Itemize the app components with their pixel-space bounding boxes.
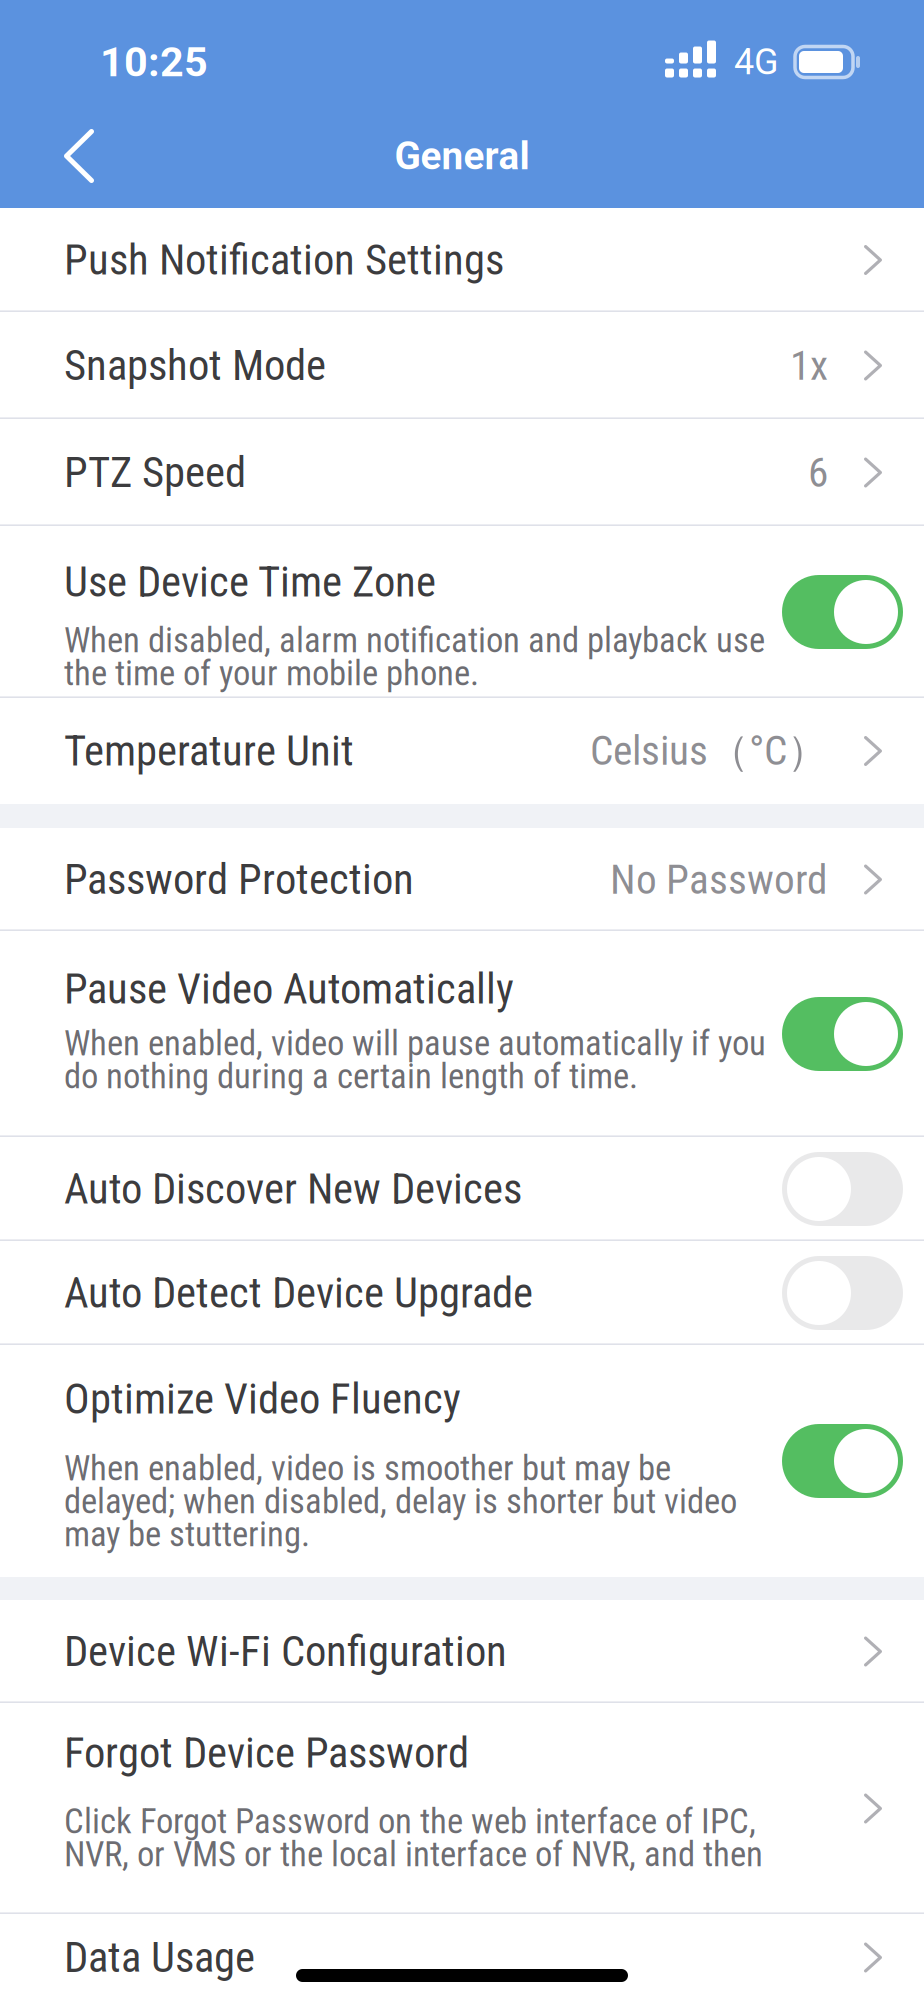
staticText: Data Usage bbox=[64, 1932, 255, 1982]
button[interactable]: Push Notification Settings bbox=[0, 208, 924, 312]
button[interactable]: Forgot Device Password bbox=[0, 1703, 924, 1914]
button[interactable]: Temperature Unit bbox=[0, 698, 924, 804]
staticText: the time of your mobile phone. bbox=[64, 653, 479, 694]
staticText: Push Notification Settings bbox=[64, 235, 504, 285]
button[interactable]: Auto Discover New Devices bbox=[0, 1137, 924, 1241]
button[interactable]: Snapshot Mode bbox=[0, 312, 924, 419]
button[interactable]: Pause Video Automatically bbox=[0, 931, 924, 1137]
staticText: When enabled, video will pause automatic… bbox=[64, 1023, 766, 1064]
staticText: Click Forgot Password on the web interfa… bbox=[64, 1801, 756, 1842]
button[interactable]: Data Usage bbox=[0, 1914, 924, 2000]
staticText: may be stuttering. bbox=[64, 1514, 310, 1555]
staticText: Celsius（°C） bbox=[590, 725, 828, 777]
staticText: Forgot Device Password bbox=[64, 1728, 469, 1778]
staticText: No Password bbox=[610, 855, 828, 904]
staticText: 10:25 bbox=[100, 38, 208, 86]
button[interactable]: PTZ Speed bbox=[0, 419, 924, 526]
staticText: 1x bbox=[790, 341, 828, 390]
staticText: 4G bbox=[734, 41, 779, 83]
staticText: NVR, or VMS or the local interface of NV… bbox=[64, 1834, 763, 1875]
staticText: General bbox=[394, 133, 529, 179]
staticText: Use Device Time Zone bbox=[64, 557, 436, 607]
button[interactable]: Optimize Video Fluency bbox=[0, 1345, 924, 1577]
staticText: Optimize Video Fluency bbox=[64, 1374, 461, 1424]
button[interactable]: Back bbox=[0, 104, 130, 208]
staticText: Pause Video Automatically bbox=[64, 964, 514, 1014]
staticText: Snapshot Mode bbox=[64, 340, 326, 390]
staticText: Auto Detect Device Upgrade bbox=[64, 1268, 533, 1318]
button[interactable]: Use Device Time Zone bbox=[0, 526, 924, 698]
staticText: Password Protection bbox=[64, 854, 414, 904]
staticText: do nothing during a certain length of ti… bbox=[64, 1056, 638, 1097]
button[interactable]: Device Wi-Fi Configuration bbox=[0, 1600, 924, 1703]
staticText: 6 bbox=[808, 448, 828, 497]
staticText: delayed; when disabled, delay is shorter… bbox=[64, 1481, 737, 1522]
staticText: Temperature Unit bbox=[64, 726, 354, 776]
staticText: Device Wi-Fi Configuration bbox=[64, 1626, 507, 1676]
staticText: When enabled, video is smoother but may … bbox=[64, 1448, 671, 1489]
button[interactable]: Password Protection bbox=[0, 828, 924, 931]
staticText: When disabled, alarm notification and pl… bbox=[64, 620, 765, 661]
staticText: Auto Discover New Devices bbox=[64, 1164, 522, 1214]
staticText: PTZ Speed bbox=[64, 447, 246, 497]
button[interactable]: Auto Detect Device Upgrade bbox=[0, 1241, 924, 1345]
